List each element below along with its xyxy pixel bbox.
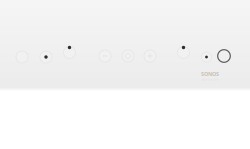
button[interactable]: Bluetooth <box>175 42 191 60</box>
button[interactable]: Mode <box>61 42 77 60</box>
button[interactable]: Source <box>38 49 54 65</box>
button[interactable]: Standby <box>215 47 233 65</box>
staticText: SONOS <box>201 70 219 77</box>
button[interactable]: Select <box>120 48 136 64</box>
button[interactable]: Pair <box>199 50 213 64</box>
